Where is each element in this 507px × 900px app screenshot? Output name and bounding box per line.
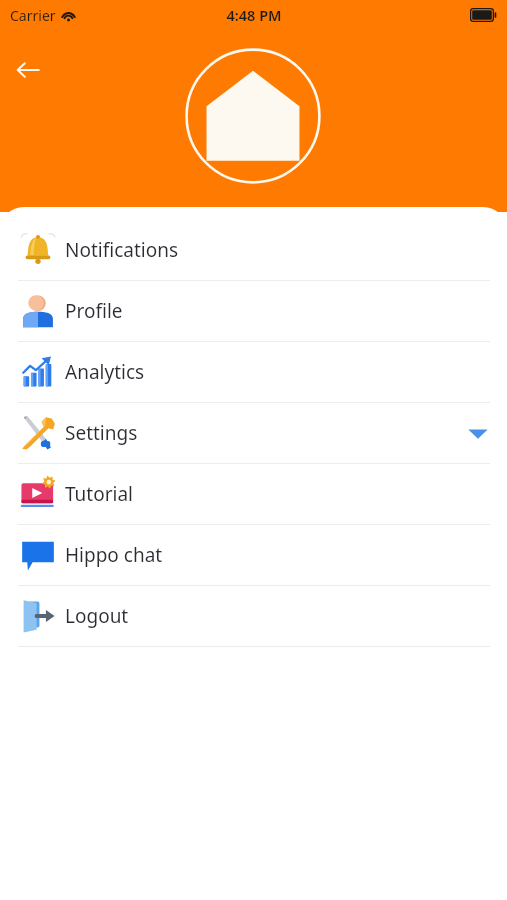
staticText: Logout — [65, 603, 129, 629]
button[interactable]: Hippo chat — [0, 525, 507, 585]
button[interactable]: Notifications — [0, 220, 507, 280]
button[interactable]: Analytics — [0, 342, 507, 402]
staticText: Hippo chat — [65, 542, 163, 568]
button[interactable]: Logout — [0, 586, 507, 646]
staticText: Notifications — [65, 237, 179, 263]
staticText: 4:48 PM — [226, 5, 282, 25]
staticText: Analytics — [65, 359, 145, 385]
button[interactable]: Tutorial — [0, 464, 507, 524]
staticText: Tutorial — [65, 481, 134, 507]
staticText: Profile — [65, 298, 123, 324]
button[interactable]: Back — [8, 50, 48, 90]
staticText: Carrier — [10, 6, 56, 25]
staticText: Settings — [65, 420, 138, 446]
button[interactable]: Profile — [0, 281, 507, 341]
button[interactable]: Settings — [0, 403, 507, 463]
